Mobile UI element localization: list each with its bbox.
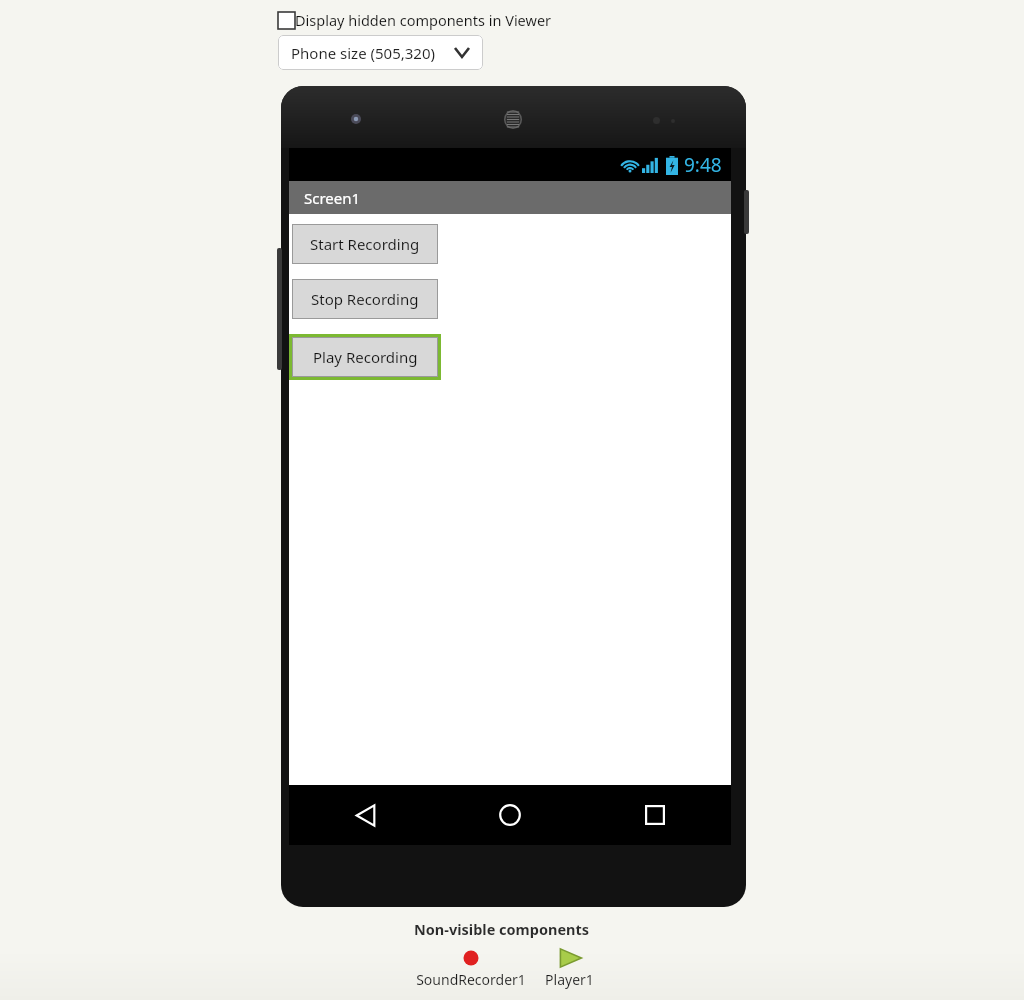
staticText: Play Recording xyxy=(313,347,418,367)
other: SoundRecorder1 xyxy=(458,946,484,970)
button[interactable]: Play Recording xyxy=(292,337,438,377)
button[interactable]: SoundRecorder1 xyxy=(416,946,541,989)
staticText: Stop Recording xyxy=(311,289,419,309)
staticText: Start Recording xyxy=(310,234,420,254)
button[interactable]: Start Recording xyxy=(292,224,438,264)
button[interactable]: Stop Recording xyxy=(292,279,438,319)
button[interactable]: Phone size (505,320) xyxy=(278,35,483,70)
button[interactable]: Home xyxy=(488,793,532,837)
button[interactable]: Display hidden components in Viewer xyxy=(278,10,552,30)
button[interactable]: Recent apps xyxy=(633,793,677,837)
staticText: Phone size (505,320) xyxy=(291,43,436,63)
staticText: Player1 xyxy=(545,970,594,989)
staticText: Non-visible components xyxy=(414,919,590,939)
button[interactable]: Player1 xyxy=(545,946,611,989)
staticText: Display hidden components in Viewer xyxy=(295,10,552,30)
staticText: SoundRecorder1 xyxy=(416,970,526,989)
button[interactable]: Back xyxy=(343,793,387,837)
staticText: Screen1 xyxy=(304,188,361,208)
staticText: 9:48 xyxy=(684,152,722,178)
other: Player1 xyxy=(555,946,585,970)
